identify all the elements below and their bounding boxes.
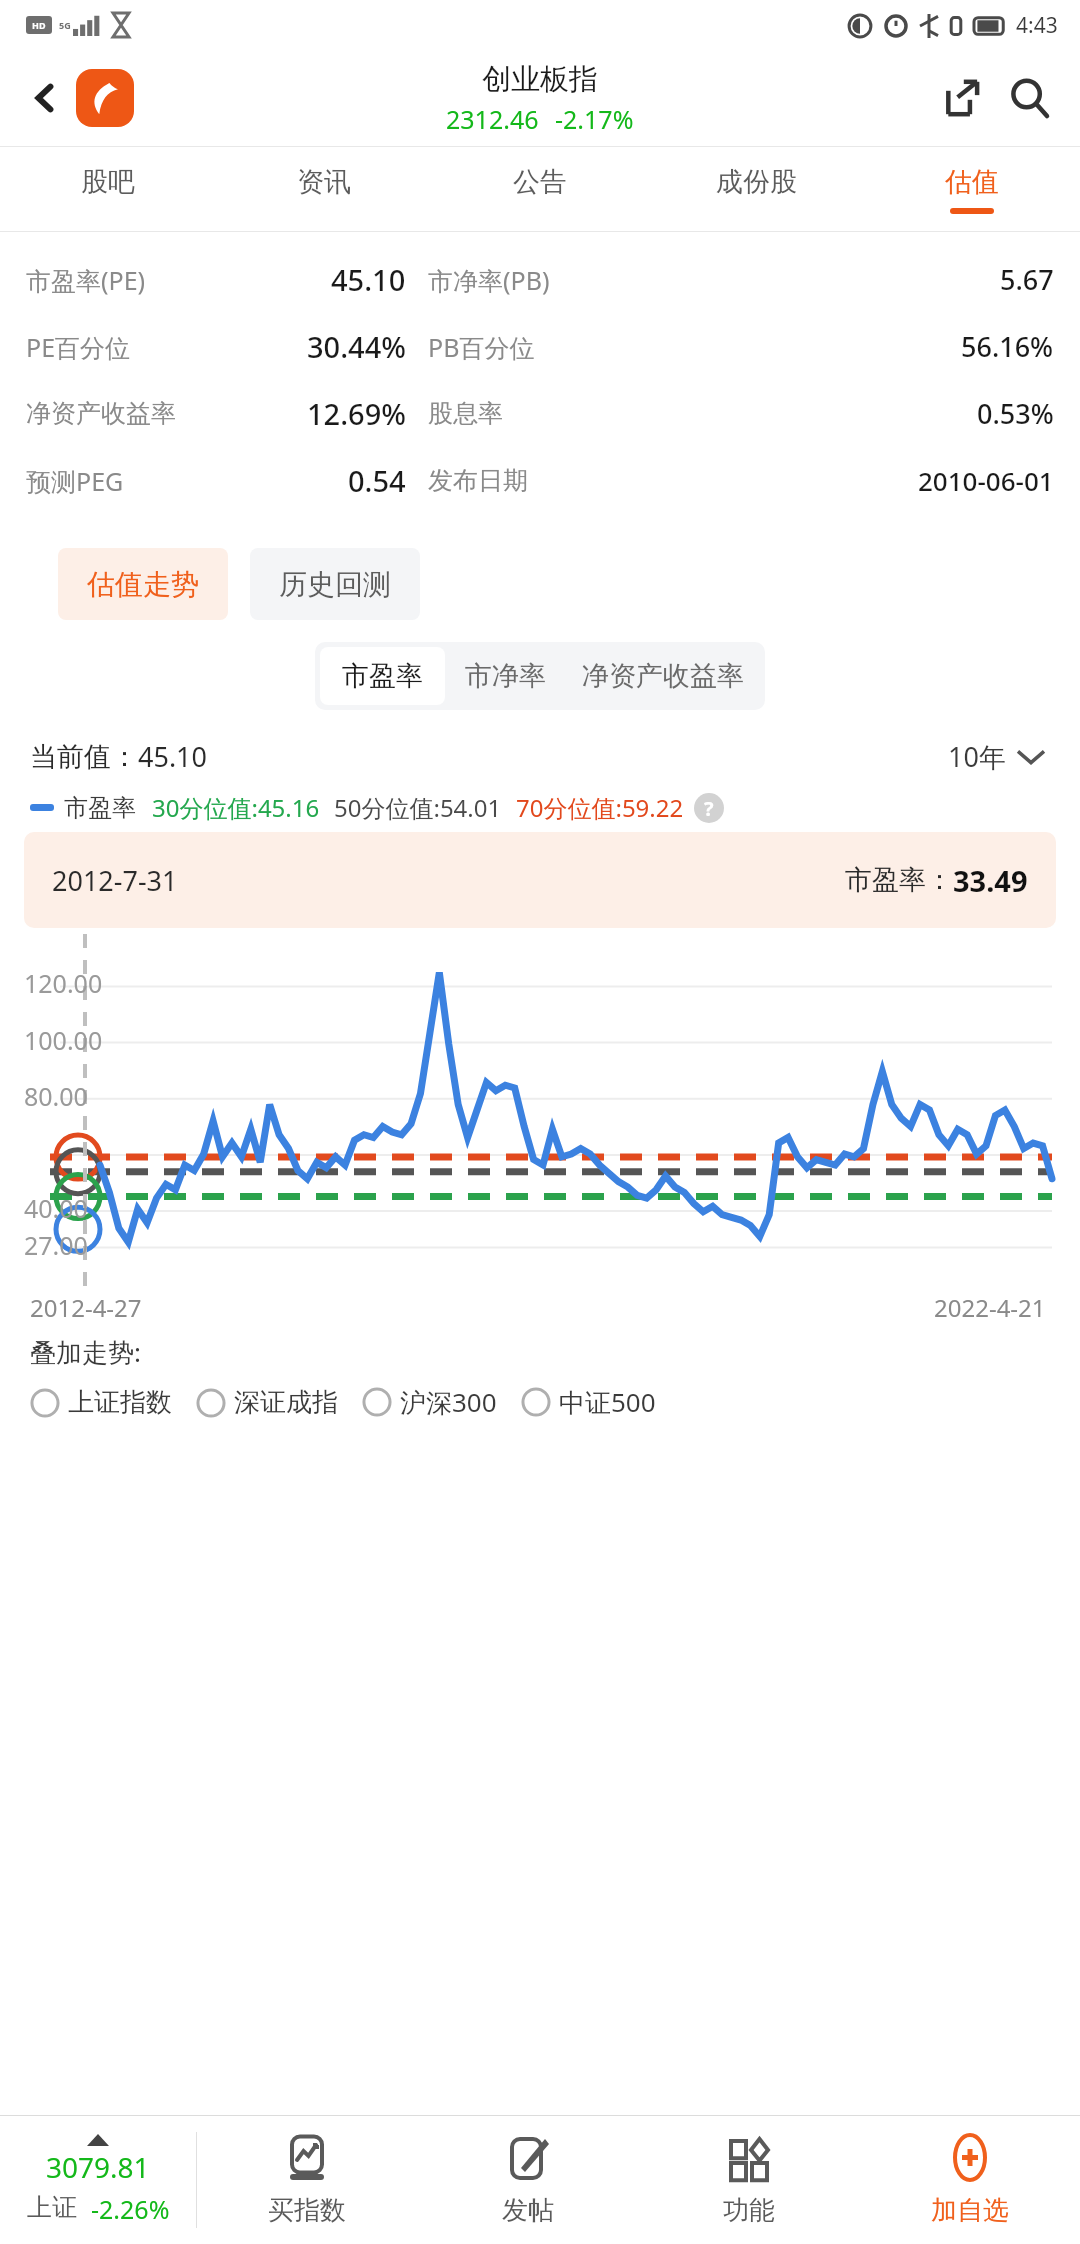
- button[interactable]: 发帖: [417, 2116, 638, 2244]
- staticText: 45.10: [138, 738, 208, 775]
- staticText: 估值: [945, 165, 999, 199]
- button[interactable]: Share: [932, 68, 992, 128]
- staticText: 发帖: [502, 2194, 554, 2227]
- staticText: -2.17%: [555, 102, 634, 136]
- staticText: 净资产收益率: [26, 398, 176, 429]
- staticText: 资讯: [297, 165, 351, 199]
- staticText: 2022-4-21: [934, 1291, 1046, 1324]
- staticText: 沪深300: [400, 1384, 497, 1420]
- staticText: 创业板指: [482, 61, 598, 98]
- staticText: 2312.46: [446, 102, 539, 136]
- staticText: 叠加走势:: [30, 1334, 141, 1370]
- staticText: 股息率: [428, 398, 503, 429]
- staticText: 市净率(PB): [428, 263, 550, 297]
- staticText: 估值走势: [87, 567, 199, 602]
- staticText: 4:43: [1016, 11, 1058, 40]
- staticText: 上证指数: [68, 1386, 172, 1419]
- staticText: 上证: [27, 2192, 77, 2223]
- staticText: 56.16%: [961, 328, 1054, 365]
- staticText: 12.69%: [307, 394, 406, 433]
- staticText: 80.00: [24, 1079, 88, 1113]
- staticText: ?: [704, 795, 714, 822]
- staticText: 100.00: [24, 1023, 103, 1057]
- staticText: 33.49: [953, 861, 1028, 900]
- button[interactable]: 深证成指: [196, 1386, 362, 1419]
- button[interactable]: 市盈率: [320, 647, 445, 705]
- staticText: 5G: [59, 19, 71, 31]
- button[interactable]: 买指数: [197, 2116, 417, 2244]
- staticText: 成份股: [716, 165, 797, 199]
- staticText: 功能: [723, 2194, 775, 2227]
- staticText: 买指数: [268, 2194, 346, 2227]
- button[interactable]: 加自选: [859, 2116, 1080, 2244]
- staticText: 5.67: [1000, 261, 1054, 298]
- staticText: -2.26%: [91, 2192, 170, 2226]
- staticText: 净资产收益率: [582, 659, 744, 693]
- staticText: PB百分位: [428, 330, 535, 364]
- staticText: 27.00: [24, 1228, 88, 1262]
- staticText: 2012-7-31: [52, 862, 178, 899]
- button[interactable]: 功能: [638, 2116, 859, 2244]
- button[interactable]: 市净率: [445, 647, 566, 705]
- staticText: 45.10: [331, 260, 406, 299]
- staticText: 市盈率(PE): [26, 263, 146, 297]
- staticText: 预测PEG: [26, 464, 124, 498]
- staticText: 市净率: [465, 659, 546, 693]
- staticText: 30.44%: [307, 327, 406, 366]
- staticText: 当前值：: [30, 740, 138, 774]
- button[interactable]: 上证指数: [30, 1386, 196, 1419]
- staticText: 30分位值:45.16: [152, 791, 320, 824]
- button[interactable]: Help: [694, 793, 724, 823]
- button[interactable]: 公告: [432, 147, 648, 231]
- button[interactable]: Search: [998, 67, 1060, 129]
- staticText: 50分位值:54.01: [334, 791, 502, 824]
- staticText: 中证500: [559, 1384, 656, 1420]
- button[interactable]: App logo: [76, 69, 134, 127]
- staticText: 公告: [513, 165, 567, 199]
- staticText: 加自选: [931, 2194, 1009, 2227]
- button[interactable]: 历史回测: [250, 548, 420, 620]
- staticText: 市盈率：: [845, 863, 953, 897]
- staticText: 市盈率: [64, 793, 136, 823]
- staticText: 0.54: [348, 461, 406, 500]
- button[interactable]: 成份股: [648, 147, 864, 231]
- staticText: 深证成指: [234, 1386, 338, 1419]
- staticText: 40.00: [24, 1191, 88, 1225]
- staticText: 2010-06-01: [918, 463, 1054, 498]
- staticText: PE百分位: [26, 330, 131, 364]
- button[interactable]: 股吧: [0, 147, 216, 231]
- staticText: HD: [32, 19, 46, 31]
- button[interactable]: 估值: [864, 147, 1080, 231]
- button[interactable]: 估值走势: [58, 548, 228, 620]
- button[interactable]: 净资产收益率: [566, 647, 760, 705]
- staticText: 3079.81: [46, 2148, 150, 2186]
- staticText: 10年: [948, 738, 1006, 775]
- button[interactable]: 10年: [942, 732, 1050, 781]
- staticText: 0.53%: [977, 395, 1054, 432]
- staticText: 历史回测: [279, 567, 391, 602]
- button[interactable]: 沪深300: [362, 1384, 521, 1420]
- staticText: 市盈率: [342, 659, 423, 693]
- button[interactable]: Back: [18, 71, 72, 125]
- button[interactable]: 3079.81: [0, 2116, 196, 2244]
- staticText: 股吧: [81, 165, 135, 199]
- staticText: 70分位值:59.22: [516, 791, 684, 824]
- staticText: 120.00: [24, 966, 103, 1000]
- button[interactable]: 资讯: [216, 147, 432, 231]
- staticText: 2012-4-27: [30, 1291, 142, 1324]
- button[interactable]: 中证500: [521, 1384, 680, 1420]
- staticText: 发布日期: [428, 465, 528, 496]
